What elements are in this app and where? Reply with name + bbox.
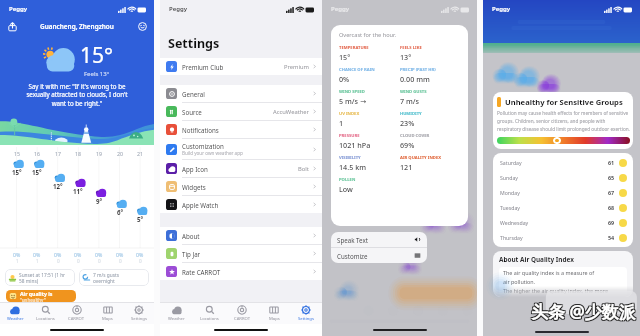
button[interactable]: Weather: [0, 303, 30, 324]
staticText: Peggy: [9, 5, 28, 13]
button[interactable]: Rate CARROT: [160, 263, 322, 280]
staticText: Speak Text: [337, 236, 368, 244]
staticText: 69%: [400, 140, 415, 150]
staticText: Settings: [168, 35, 220, 52]
button[interactable]: Speak Text: [337, 232, 421, 247]
staticText: Customize: [337, 252, 368, 260]
staticText: 头条 @少数派: [532, 301, 637, 324]
button[interactable]: Locations: [30, 303, 61, 324]
staticText: 14.5 km: [339, 162, 366, 172]
staticText: Premium: [284, 63, 309, 71]
staticText: Premium Club: [182, 63, 224, 71]
button[interactable]: Premium Club: [160, 58, 322, 75]
staticText: 61: [608, 159, 615, 166]
staticText: 0: [139, 258, 142, 264]
button[interactable]: Widgets: [160, 178, 322, 196]
staticText: 头条 @少数派: [530, 301, 635, 324]
button[interactable]: Source: [160, 103, 322, 121]
staticText: Weather: [168, 316, 185, 322]
button[interactable]: Apple Watch: [160, 196, 322, 213]
staticText: 7 m/s: [400, 96, 420, 106]
staticText: 0%: [54, 251, 62, 258]
button[interactable]: CARROT: [226, 303, 258, 324]
staticText: Say it with me: "If it's wrong to be sex…: [0, 82, 154, 107]
staticText: Unhealthy for Sensitive Groups: [505, 97, 623, 107]
staticText: 21: [137, 150, 143, 157]
staticText: 9°: [96, 197, 103, 205]
staticText: 13°: [400, 52, 412, 62]
staticText: 0%: [95, 251, 103, 258]
button[interactable]: App Icon: [160, 160, 322, 178]
button[interactable]: Thursday: [500, 230, 627, 245]
button[interactable]: Tip Jar: [160, 245, 322, 263]
staticText: WIND GUSTS: [400, 89, 427, 95]
staticText: PRECIP (PAST HR): [400, 67, 436, 73]
staticText: AccuWeather: [273, 108, 309, 116]
staticText: Source: [182, 108, 202, 116]
button[interactable]: Sunday: [500, 170, 627, 185]
staticText: CARROT: [234, 316, 251, 322]
staticText: 69: [608, 219, 615, 226]
staticText: The higher the air quality index, the mo…: [503, 287, 608, 294]
button[interactable]: General: [160, 85, 322, 103]
staticText: AIR QUALITY INDEX: [400, 155, 442, 161]
button[interactable]: Settings: [123, 303, 154, 324]
staticText: 20: [117, 150, 123, 157]
staticText: Customization: [182, 142, 224, 150]
button[interactable]: Customize: [337, 248, 421, 263]
staticText: 0%: [116, 251, 124, 258]
button[interactable]: Maps: [258, 303, 290, 324]
staticText: Settings: [131, 316, 147, 322]
staticText: CLOUD COVER: [400, 133, 430, 139]
staticText: 12°: [53, 182, 63, 190]
staticText: The air quality index is a measure of ai…: [503, 269, 595, 285]
staticText: 1: [339, 118, 344, 128]
staticText: Air quality is: [20, 290, 53, 297]
button[interactable]: Sunset at 17:51 (1 hr 58 mins): [5, 269, 75, 286]
button[interactable]: 7 m/s gusts overnight: [79, 269, 149, 286]
staticText: 7 m/s gusts overnight: [93, 272, 120, 284]
button[interactable]: Notifications: [160, 121, 322, 139]
button[interactable]: Customization: [160, 139, 322, 160]
staticText: Tip Jar: [182, 250, 201, 258]
button[interactable]: Locations: [193, 303, 226, 324]
staticText: 15°: [80, 41, 114, 70]
button[interactable]: Maps: [92, 303, 123, 324]
button[interactable]: Weather: [160, 303, 193, 324]
staticText: 6°: [117, 208, 124, 216]
button[interactable]: Air quality is: [6, 290, 76, 302]
button[interactable]: Wednesday: [500, 215, 627, 230]
button[interactable]: More options: [135, 19, 149, 33]
staticText: 0%: [13, 251, 21, 258]
staticText: 65: [608, 174, 615, 181]
staticText: 18: [75, 150, 81, 157]
button[interactable]: Tuesday: [500, 200, 627, 215]
staticText: Feels 13°: [84, 70, 110, 78]
staticText: 0%: [33, 251, 41, 258]
staticText: Maps: [269, 316, 280, 322]
staticText: 头条 @少数派: [531, 299, 636, 322]
staticText: 1: [36, 258, 39, 264]
staticText: Bolt: [298, 165, 309, 173]
staticText: Apple Watch: [182, 201, 219, 209]
staticText: 头条 @少数派: [532, 299, 637, 322]
button[interactable]: About: [160, 227, 322, 245]
staticText: HUMIDITY: [400, 111, 422, 117]
staticText: Tuesday: [500, 204, 520, 211]
button[interactable]: Saturday: [500, 155, 627, 170]
button[interactable]: CARROT: [61, 303, 92, 324]
button[interactable]: Settings: [290, 303, 322, 324]
staticText: 67: [608, 189, 615, 196]
staticText: General: [182, 90, 205, 98]
staticText: Maps: [102, 316, 113, 322]
button[interactable]: Share: [5, 19, 19, 33]
staticText: Thursday: [500, 234, 523, 241]
staticText: 121: [400, 162, 413, 172]
staticText: WIND SPEED: [339, 89, 365, 95]
staticText: Notifications: [182, 126, 219, 134]
staticText: Peggy: [492, 5, 511, 13]
staticText: "unhealthy": [20, 297, 46, 302]
staticText: 头条 @少数派: [531, 301, 636, 324]
staticText: 23%: [400, 118, 415, 128]
button[interactable]: Monday: [500, 185, 627, 200]
